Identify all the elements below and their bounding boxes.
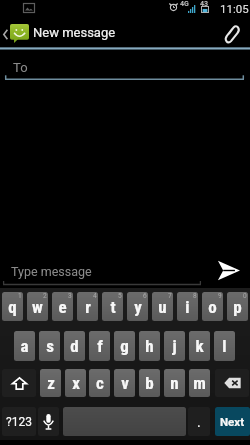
button[interactable]: e	[52, 292, 73, 321]
button[interactable]: a	[14, 331, 35, 361]
button[interactable]: u	[152, 292, 173, 321]
button[interactable]: Attach	[217, 18, 247, 48]
staticText: w	[32, 297, 43, 317]
button[interactable]: k	[189, 331, 210, 361]
button[interactable]: x	[65, 369, 86, 397]
button[interactable]: Space	[63, 407, 186, 436]
staticText: c	[96, 373, 104, 393]
button[interactable]: z	[40, 369, 61, 397]
button[interactable]: s	[39, 331, 60, 361]
staticText: f	[97, 336, 103, 356]
button[interactable]: r	[77, 292, 98, 321]
staticText: 7	[168, 292, 172, 300]
button[interactable]: d	[64, 331, 85, 361]
staticText: q	[8, 297, 17, 317]
button[interactable]: Type message	[0, 252, 204, 288]
staticText: 4	[93, 292, 97, 300]
button[interactable]: y	[127, 292, 148, 321]
staticText: z	[47, 373, 55, 393]
button[interactable]: Navigate up	[0, 15, 120, 50]
staticText: t	[110, 297, 116, 317]
staticText: x	[72, 373, 80, 393]
staticText: j	[172, 336, 177, 356]
button[interactable]: ?123	[2, 407, 36, 436]
staticText: o	[208, 297, 217, 317]
staticText: 9	[218, 292, 222, 300]
other: Navigate up	[3, 29, 8, 40]
button[interactable]: c	[89, 369, 110, 397]
staticText: v	[121, 373, 129, 393]
button[interactable]: o	[202, 292, 223, 321]
staticText: 43	[200, 0, 209, 8]
button[interactable]: p	[227, 292, 248, 321]
staticText: r	[85, 297, 91, 317]
staticText: 8	[193, 292, 197, 300]
staticText: 4G	[180, 0, 189, 8]
staticText: 0	[243, 292, 247, 300]
button[interactable]: g	[114, 331, 135, 361]
staticText: Next	[220, 415, 245, 428]
button[interactable]: Next	[215, 407, 250, 436]
button[interactable]: j	[164, 331, 185, 361]
staticText: l	[222, 336, 227, 356]
button[interactable]: Voice input	[38, 407, 59, 436]
button[interactable]: h	[139, 331, 160, 361]
button[interactable]: t	[102, 292, 123, 321]
button[interactable]: .	[188, 407, 210, 436]
staticText: 6	[143, 292, 147, 300]
button[interactable]: To	[0, 50, 250, 82]
staticText: 1	[18, 292, 22, 300]
staticText: To	[13, 60, 28, 75]
button[interactable]: Shift	[2, 369, 36, 397]
button[interactable]: m	[189, 369, 210, 397]
staticText: .	[197, 414, 201, 430]
staticText: k	[195, 336, 204, 356]
staticText: ?123	[6, 415, 32, 429]
staticText: Type message	[11, 264, 92, 279]
staticText: 2	[43, 292, 47, 300]
staticText: e	[58, 297, 67, 317]
staticText: p	[233, 297, 242, 317]
staticText: a	[20, 336, 29, 356]
button[interactable]: w	[27, 292, 48, 321]
staticText: 3	[68, 292, 72, 300]
staticText: g	[120, 336, 129, 356]
button[interactable]: Delete	[215, 369, 249, 397]
button[interactable]: v	[114, 369, 135, 397]
staticText: m	[193, 373, 206, 393]
staticText: y	[134, 297, 142, 317]
staticText: s	[46, 336, 54, 356]
staticText: d	[70, 336, 79, 356]
button[interactable]: n	[164, 369, 185, 397]
staticText: b	[145, 373, 154, 393]
staticText: n	[170, 373, 179, 393]
button[interactable]: i	[177, 292, 198, 321]
button[interactable]: Send	[206, 252, 250, 288]
staticText: u	[158, 297, 167, 317]
staticText: New message	[33, 25, 116, 40]
button[interactable]: l	[214, 331, 235, 361]
staticText: i	[185, 297, 190, 317]
staticText: 5	[118, 292, 122, 300]
staticText: 11:05	[220, 2, 249, 15]
button[interactable]: q	[2, 292, 23, 321]
staticText: h	[145, 336, 154, 356]
button[interactable]: b	[139, 369, 160, 397]
button[interactable]: f	[89, 331, 110, 361]
